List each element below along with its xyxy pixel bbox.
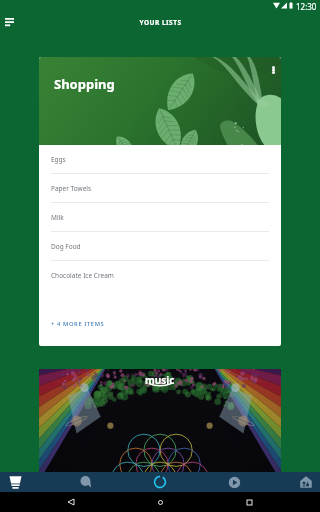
button[interactable]: Shopping [39, 57, 281, 346]
button[interactable]: Back [59, 492, 83, 512]
staticText: Dog Food [51, 242, 81, 251]
button[interactable]: More options [266, 63, 280, 77]
staticText: 12:30 [296, 1, 317, 12]
button[interactable]: Home [289, 472, 320, 492]
button[interactable]: Chocolate Ice Cream [39, 261, 281, 290]
staticText: Paper Towels [51, 184, 92, 193]
staticText: + 4 MORE ITEMS [51, 320, 105, 328]
staticText: Shopping [54, 75, 115, 93]
button[interactable]: Open navigation menu [0, 11, 20, 33]
button[interactable]: Messages [69, 472, 103, 492]
button[interactable]: Assistant [143, 472, 177, 492]
staticText: Milk [51, 213, 64, 222]
button[interactable]: + 4 MORE ITEMS [39, 290, 281, 346]
button[interactable]: Recent apps [237, 492, 261, 512]
staticText: music [145, 373, 175, 387]
button[interactable]: Shopping list [0, 472, 32, 492]
button[interactable]: Eggs [39, 145, 281, 174]
button[interactable]: Milk [39, 203, 281, 232]
staticText: YOUR LISTS [139, 18, 182, 27]
button[interactable]: Paper Towels [39, 174, 281, 203]
staticText: Chocolate Ice Cream [51, 271, 114, 280]
button[interactable]: Dog Food [39, 232, 281, 261]
button[interactable]: Home [148, 492, 172, 512]
staticText: Eggs [51, 155, 66, 164]
button[interactable]: Play [217, 472, 251, 492]
button[interactable]: Amazon Music album [39, 369, 281, 473]
